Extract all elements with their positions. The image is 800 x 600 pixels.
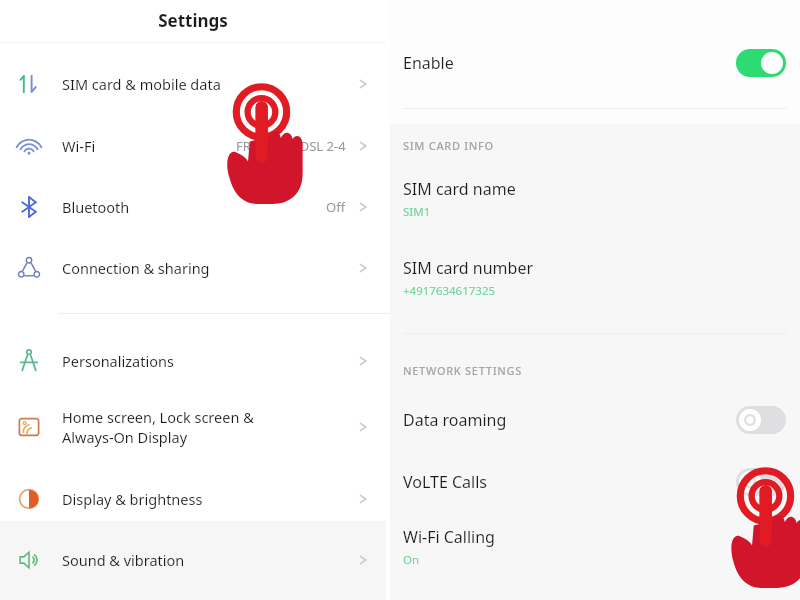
staticText: NETWORK SETTINGS bbox=[403, 363, 522, 378]
other: Display and brightness bbox=[16, 486, 42, 512]
button[interactable]: Wi-Fi bbox=[0, 122, 386, 170]
button[interactable]: Sound and vibration bbox=[0, 536, 386, 584]
staticText: SIM1 bbox=[403, 204, 431, 220]
staticText: Home screen, Lock screen & Always-On Dis… bbox=[62, 407, 254, 448]
button[interactable]: Toggle off bbox=[736, 468, 786, 496]
staticText: Connection & sharing bbox=[62, 258, 210, 278]
button[interactable]: VoLTE Calls bbox=[390, 460, 800, 504]
other: Home screen, Lock screen and Always-On D… bbox=[16, 414, 42, 440]
staticText: Wi-Fi bbox=[62, 136, 96, 156]
button[interactable]: Home screen, Lock screen and Always-On D… bbox=[0, 398, 386, 456]
other: Connection and sharing bbox=[16, 255, 42, 281]
other: Sound and vibration bbox=[16, 547, 42, 573]
staticText: Display & brightness bbox=[62, 489, 203, 509]
button[interactable]: Bluetooth bbox=[0, 183, 386, 231]
button[interactable]: Toggle on bbox=[736, 49, 786, 77]
button[interactable]: SIM card and mobile data bbox=[0, 60, 386, 108]
staticText: Bluetooth bbox=[62, 197, 130, 217]
staticText: Off bbox=[326, 198, 346, 216]
staticText: Data roaming bbox=[403, 409, 507, 431]
staticText: SIM CARD INFO bbox=[403, 138, 494, 153]
staticText: Settings bbox=[158, 9, 228, 32]
staticText: Enable bbox=[403, 52, 454, 74]
staticText: On bbox=[403, 552, 420, 568]
staticText: Sound & vibration bbox=[62, 550, 185, 570]
staticText: +4917634617325 bbox=[403, 283, 496, 299]
button[interactable]: Toggle off bbox=[736, 406, 786, 434]
button[interactable]: Data roaming bbox=[390, 398, 800, 442]
button[interactable]: SIM card number bbox=[390, 255, 800, 303]
button[interactable]: Personalizations bbox=[0, 337, 386, 385]
staticText: Wi-Fi Calling bbox=[403, 526, 495, 548]
other: Tap here bbox=[222, 86, 306, 204]
staticText: SIM card & mobile data bbox=[62, 74, 221, 94]
button[interactable]: Enable bbox=[390, 40, 800, 86]
staticText: SIM card name bbox=[403, 178, 516, 200]
other: SIM card and mobile data bbox=[16, 71, 42, 97]
other: Tap here bbox=[726, 470, 800, 588]
button[interactable]: SIM card name bbox=[390, 176, 800, 224]
button[interactable]: Connection and sharing bbox=[0, 244, 386, 292]
staticText: FRITZ!Box DSL 2-4 bbox=[236, 137, 346, 155]
staticText: VoLTE Calls bbox=[403, 471, 487, 493]
staticText: SIM card number bbox=[403, 257, 534, 279]
button[interactable]: Wi-Fi Calling bbox=[390, 524, 800, 568]
other: Bluetooth bbox=[16, 194, 42, 220]
other: Personalizations bbox=[16, 348, 42, 374]
staticText: Personalizations bbox=[62, 351, 174, 371]
other: Wi-Fi bbox=[16, 133, 42, 159]
button[interactable]: Display and brightness bbox=[0, 475, 386, 523]
